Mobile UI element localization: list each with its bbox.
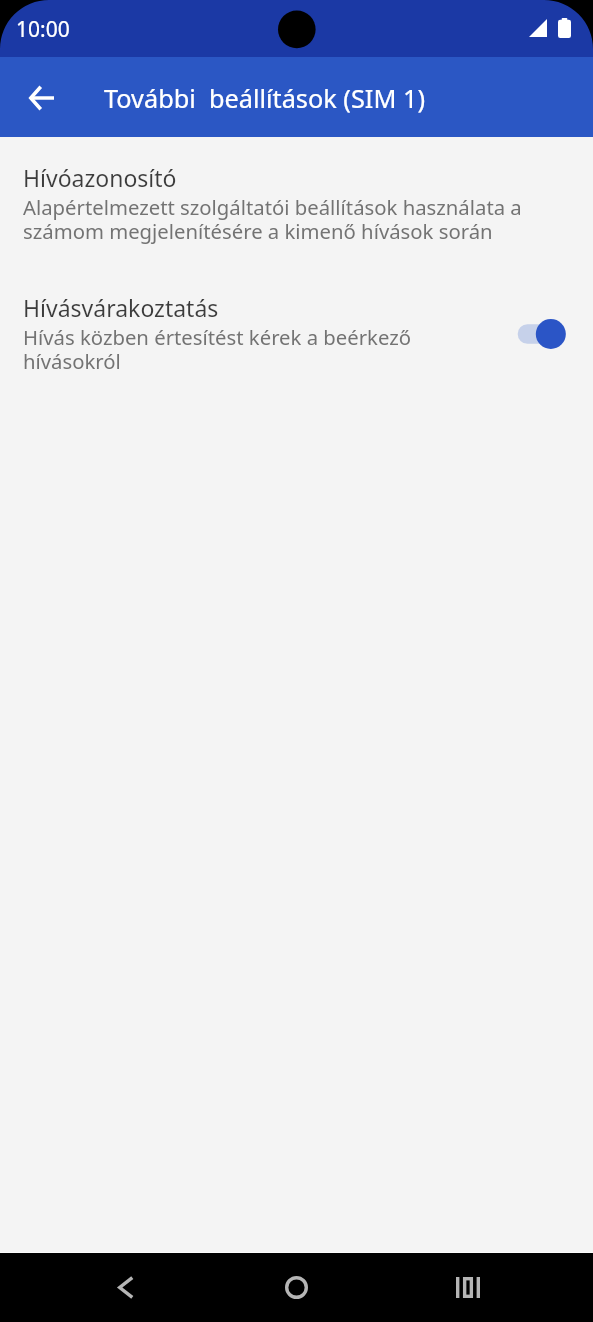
button[interactable]: Vissza (0, 1253, 198, 1322)
staticText: Hívóazonosító (23, 162, 177, 193)
staticText: További beállítások (SIM 1) (104, 81, 425, 115)
button[interactable]: Vissza (0, 57, 82, 137)
staticText: Hívás közben értesítést kérek a beérkező… (23, 323, 492, 375)
button[interactable]: Hívásvárakoztatás kapcsoló, bekapcsolva (502, 309, 577, 359)
staticText: 10:00 (16, 15, 70, 44)
button[interactable]: Hívásvárakoztatás (0, 292, 593, 375)
staticText: Alapértelmezett szolgáltatói beállítások… (23, 193, 567, 245)
staticText: Hívásvárakoztatás (23, 292, 219, 323)
button[interactable]: Legutóbbi alkalmazások (395, 1253, 593, 1322)
button[interactable]: Kezdőképernyő (198, 1253, 395, 1322)
button[interactable]: Hívóazonosító (0, 162, 593, 245)
